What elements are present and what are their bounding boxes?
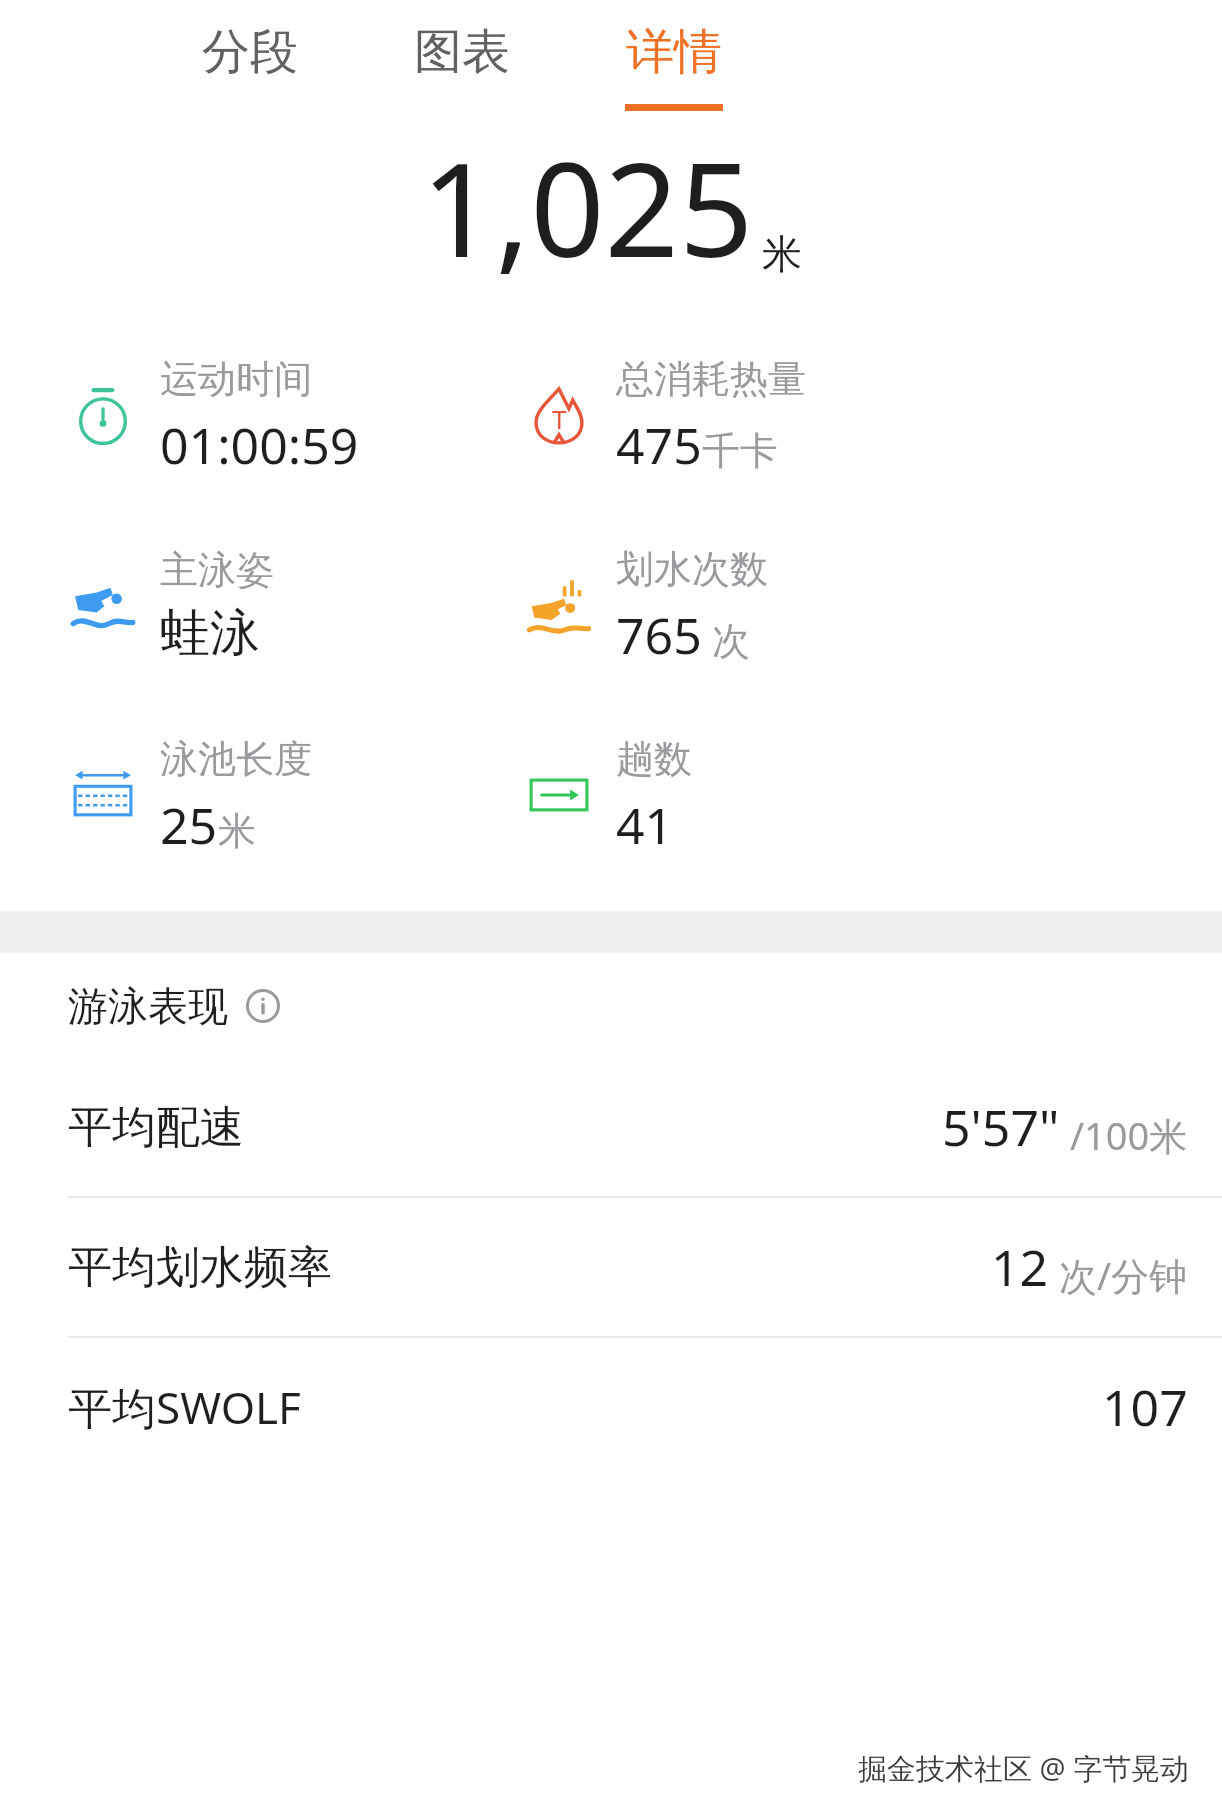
staticText: 泳池长度 (160, 735, 312, 783)
button[interactable]: 趟数 (528, 735, 1222, 855)
staticText: 5'57" (942, 1093, 1060, 1161)
staticText: 总消耗热量 (616, 355, 806, 403)
staticText: 蛙泳 (160, 602, 260, 665)
staticText: 1,025 (421, 118, 754, 293)
button[interactable]: 图表 (398, 0, 526, 104)
staticText: 掘金技术社区 @ 字节晃动 (858, 1748, 1190, 1788)
staticText: 平均划水频率 (68, 1240, 332, 1295)
button[interactable]: T (528, 355, 1222, 475)
button[interactable]: 平均SWOLF (0, 1338, 1222, 1476)
staticText: 平均配速 (68, 1100, 244, 1155)
staticText: 12 (991, 1233, 1049, 1301)
staticText: 分段 (202, 22, 298, 82)
staticText: 详情 (626, 22, 722, 82)
button[interactable]: 运动时间 (72, 355, 520, 475)
button[interactable]: 划水次数 (528, 545, 1222, 665)
button[interactable]: Info (246, 989, 280, 1023)
button[interactable]: 平均划水频率 (0, 1198, 1222, 1336)
staticText: 米 (762, 229, 802, 279)
staticText: 41 (616, 791, 674, 855)
staticText: 25 (160, 791, 218, 855)
staticText: T (552, 401, 567, 436)
staticText: 平均SWOLF (68, 1377, 301, 1437)
staticText: 475 (616, 411, 702, 475)
staticText: 游泳表现 (68, 981, 228, 1031)
button[interactable]: 分段 (186, 0, 314, 104)
button[interactable]: 详情 (610, 0, 738, 111)
staticText: 米 (218, 807, 256, 855)
staticText: 次/分钟 (1049, 1249, 1188, 1301)
staticText: 划水次数 (616, 545, 768, 593)
button[interactable]: 泳池长度 (72, 735, 520, 855)
staticText: 趟数 (616, 735, 692, 783)
staticText: 运动时间 (160, 355, 312, 403)
staticText: 107 (1102, 1373, 1188, 1441)
staticText: 01:00:59 (160, 411, 359, 475)
staticText: 765 (616, 601, 702, 665)
button[interactable]: 主泳姿 (72, 545, 520, 665)
staticText: 次 (702, 613, 750, 665)
staticText: 主泳姿 (160, 546, 274, 594)
staticText: 图表 (414, 22, 510, 82)
staticText: /100米 (1060, 1109, 1188, 1161)
button[interactable]: 平均配速 (0, 1058, 1222, 1196)
staticText: 千卡 (702, 427, 778, 475)
